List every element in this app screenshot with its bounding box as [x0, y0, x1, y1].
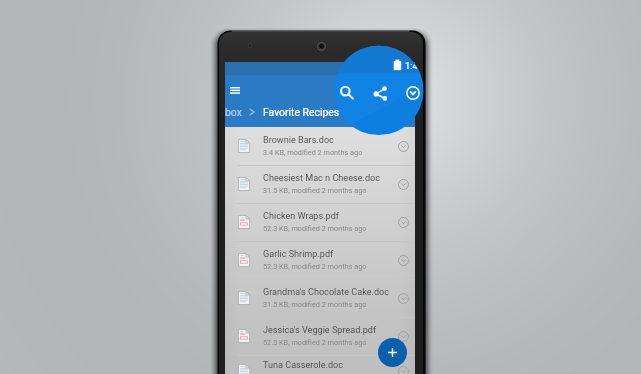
- staticText: Favorite Recipes: [263, 106, 340, 118]
- button[interactable]: More options: [393, 250, 413, 270]
- staticText: Jessica's Veggie Spread.pdf: [263, 325, 377, 336]
- staticText: box: [225, 106, 242, 118]
- button[interactable]: Brownie Bars.doc: [225, 127, 415, 165]
- staticText: 52.3 KB, modified 2 months ago: [263, 224, 367, 233]
- button[interactable]: More options: [393, 136, 413, 156]
- staticText: Garlic Shrimp.pdf: [263, 249, 334, 260]
- button[interactable]: Grandma's Chocolate Cake.doc: [225, 279, 415, 317]
- button[interactable]: Cheesiest Mac n Cheese.doc: [225, 165, 415, 203]
- staticText: 31.5 KB, modified 2 months ago: [263, 300, 367, 309]
- staticText: 52.3 KB, modified 2 months ago: [263, 338, 367, 347]
- button[interactable]: Add: [378, 338, 407, 367]
- button[interactable]: Expand: [405, 85, 421, 101]
- staticText: Cheesiest Mac n Cheese.doc: [263, 173, 380, 184]
- staticText: 31.5 KB, modified 2 months ago: [263, 186, 367, 195]
- staticText: Grandma's Chocolate Cake.doc: [263, 287, 389, 298]
- button[interactable]: Garlic Shrimp.pdf: [225, 241, 415, 279]
- button[interactable]: More options: [393, 361, 413, 374]
- button[interactable]: More options: [393, 326, 413, 346]
- button[interactable]: Tuna Casserole.doc: [225, 355, 415, 374]
- staticText: 3.4 KB, modified 2 months ago: [263, 148, 363, 157]
- button[interactable]: Share: [374, 87, 387, 100]
- button[interactable]: More options: [393, 174, 413, 194]
- button[interactable]: More options: [393, 288, 413, 308]
- staticText: 1:45: [393, 63, 412, 74]
- button[interactable]: More options: [393, 212, 413, 232]
- staticText: Chicken Wraps.pdf: [263, 211, 339, 222]
- staticText: 1:45: [405, 60, 423, 71]
- staticText: 52.3 KB, modified 2 months ago: [263, 262, 367, 271]
- button[interactable]: Chicken Wraps.pdf: [225, 203, 415, 241]
- button[interactable]: Jessica's Veggie Spread.pdf: [225, 317, 415, 355]
- button[interactable]: Open navigation drawer: [228, 84, 241, 97]
- staticText: Brownie Bars.doc: [263, 135, 334, 146]
- button[interactable]: Search: [339, 86, 352, 99]
- staticText: Tuna Casserole.doc: [263, 360, 344, 371]
